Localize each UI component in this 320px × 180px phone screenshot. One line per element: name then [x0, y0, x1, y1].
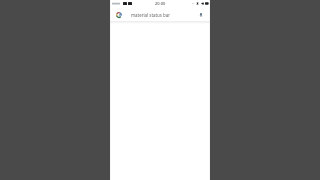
staticText: material status bar — [131, 12, 170, 18]
other: Voice search — [200, 13, 202, 17]
button[interactable]: material status bar — [110, 9, 210, 21]
staticText: 20:00 — [155, 1, 166, 6]
